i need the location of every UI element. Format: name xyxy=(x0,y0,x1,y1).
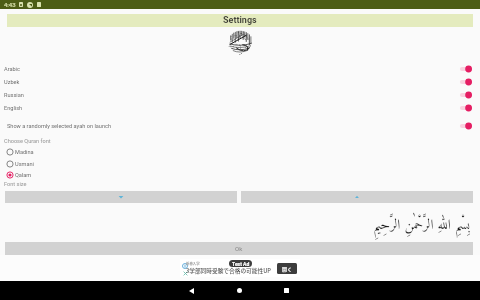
staticText: Uzbek xyxy=(4,79,20,86)
button[interactable]: Increase font size xyxy=(241,191,473,203)
staticText: Test Ad xyxy=(232,261,250,267)
button[interactable]: Back xyxy=(182,281,200,300)
staticText: Font size xyxy=(4,181,27,188)
staticText: بِسْمِ اللّٰهِ الرَّحْمٰنِ الرَّحِيمِ xyxy=(0,204,470,238)
other: Bismillah emblem xyxy=(228,30,253,55)
staticText: English xyxy=(4,105,23,112)
button[interactable]: Arabic xyxy=(0,62,480,76)
staticText: Settings xyxy=(223,15,257,26)
button[interactable]: Show a randomly selected ayah on launch xyxy=(0,119,480,133)
button[interactable]: Usmani xyxy=(0,158,480,170)
staticText: 開く xyxy=(282,265,293,272)
button[interactable]: Uzbek xyxy=(0,75,480,89)
button[interactable]: English xyxy=(0,101,480,115)
staticText: 新春入学 xyxy=(186,261,200,266)
button[interactable]: 開く xyxy=(277,263,297,274)
button[interactable]: Qalam xyxy=(0,169,480,181)
staticText: 4:43 xyxy=(4,1,16,8)
staticText: 3学部同時受験で合格の可能性UP xyxy=(186,266,272,274)
staticText: Choose Quran font xyxy=(4,138,51,145)
button[interactable]: Recents xyxy=(277,281,295,300)
staticText: Qalam xyxy=(15,172,32,179)
button[interactable]: Russian xyxy=(0,88,480,102)
staticText: Ok xyxy=(235,245,243,252)
button[interactable]: Settings xyxy=(7,14,473,27)
button[interactable]: 新春入学 xyxy=(180,259,300,277)
staticText: Madina xyxy=(15,149,34,156)
button[interactable]: Decrease font size xyxy=(5,191,237,203)
staticText: Usmani xyxy=(15,161,34,168)
staticText: Show a randomly selected ayah on launch xyxy=(7,123,111,130)
button[interactable]: Madina xyxy=(0,146,480,158)
staticText: Russian xyxy=(4,92,24,99)
staticText: Arabic xyxy=(4,66,20,73)
button[interactable]: Home xyxy=(230,281,248,300)
